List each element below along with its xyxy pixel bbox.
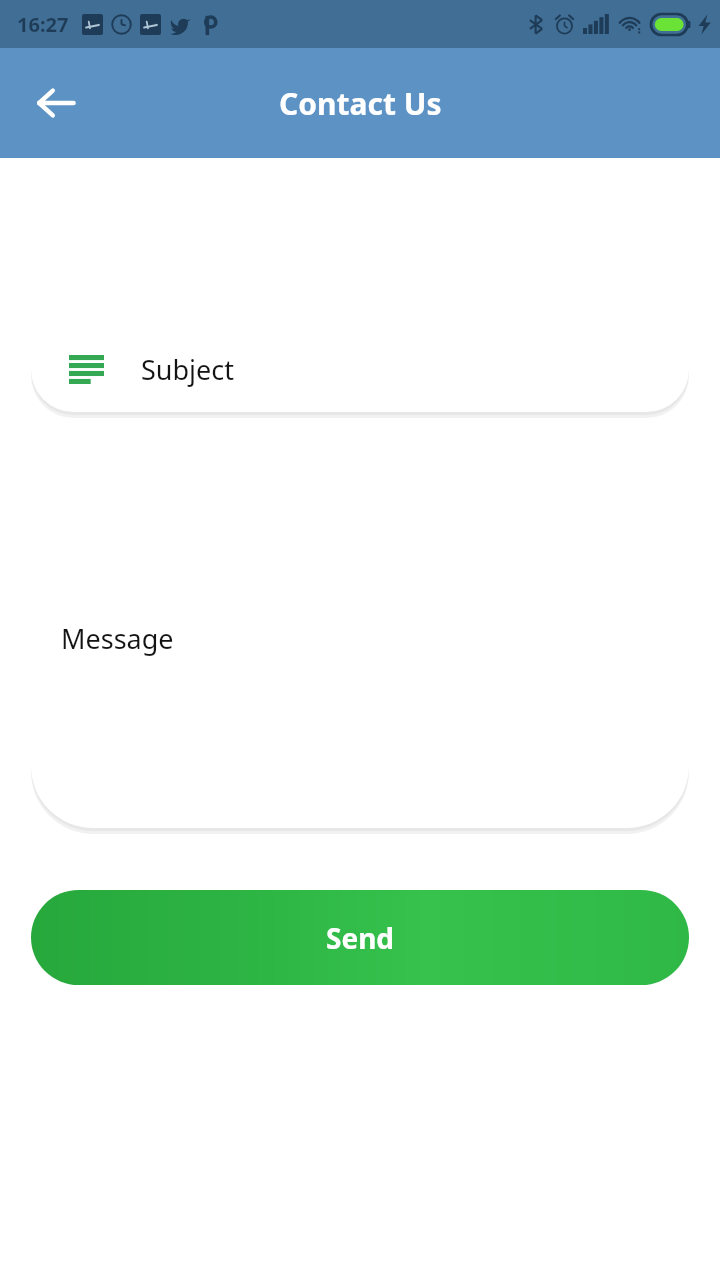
button[interactable]: Subject — [31, 327, 689, 412]
button[interactable]: Message — [31, 448, 689, 828]
staticText: Contact Us — [279, 83, 442, 124]
staticText: Subject — [141, 351, 235, 388]
button[interactable]: Back — [18, 65, 94, 141]
staticText: 16:27 — [17, 11, 69, 38]
staticText: Message — [61, 620, 174, 657]
staticText: Send — [326, 919, 395, 957]
button[interactable]: Send — [31, 890, 689, 985]
